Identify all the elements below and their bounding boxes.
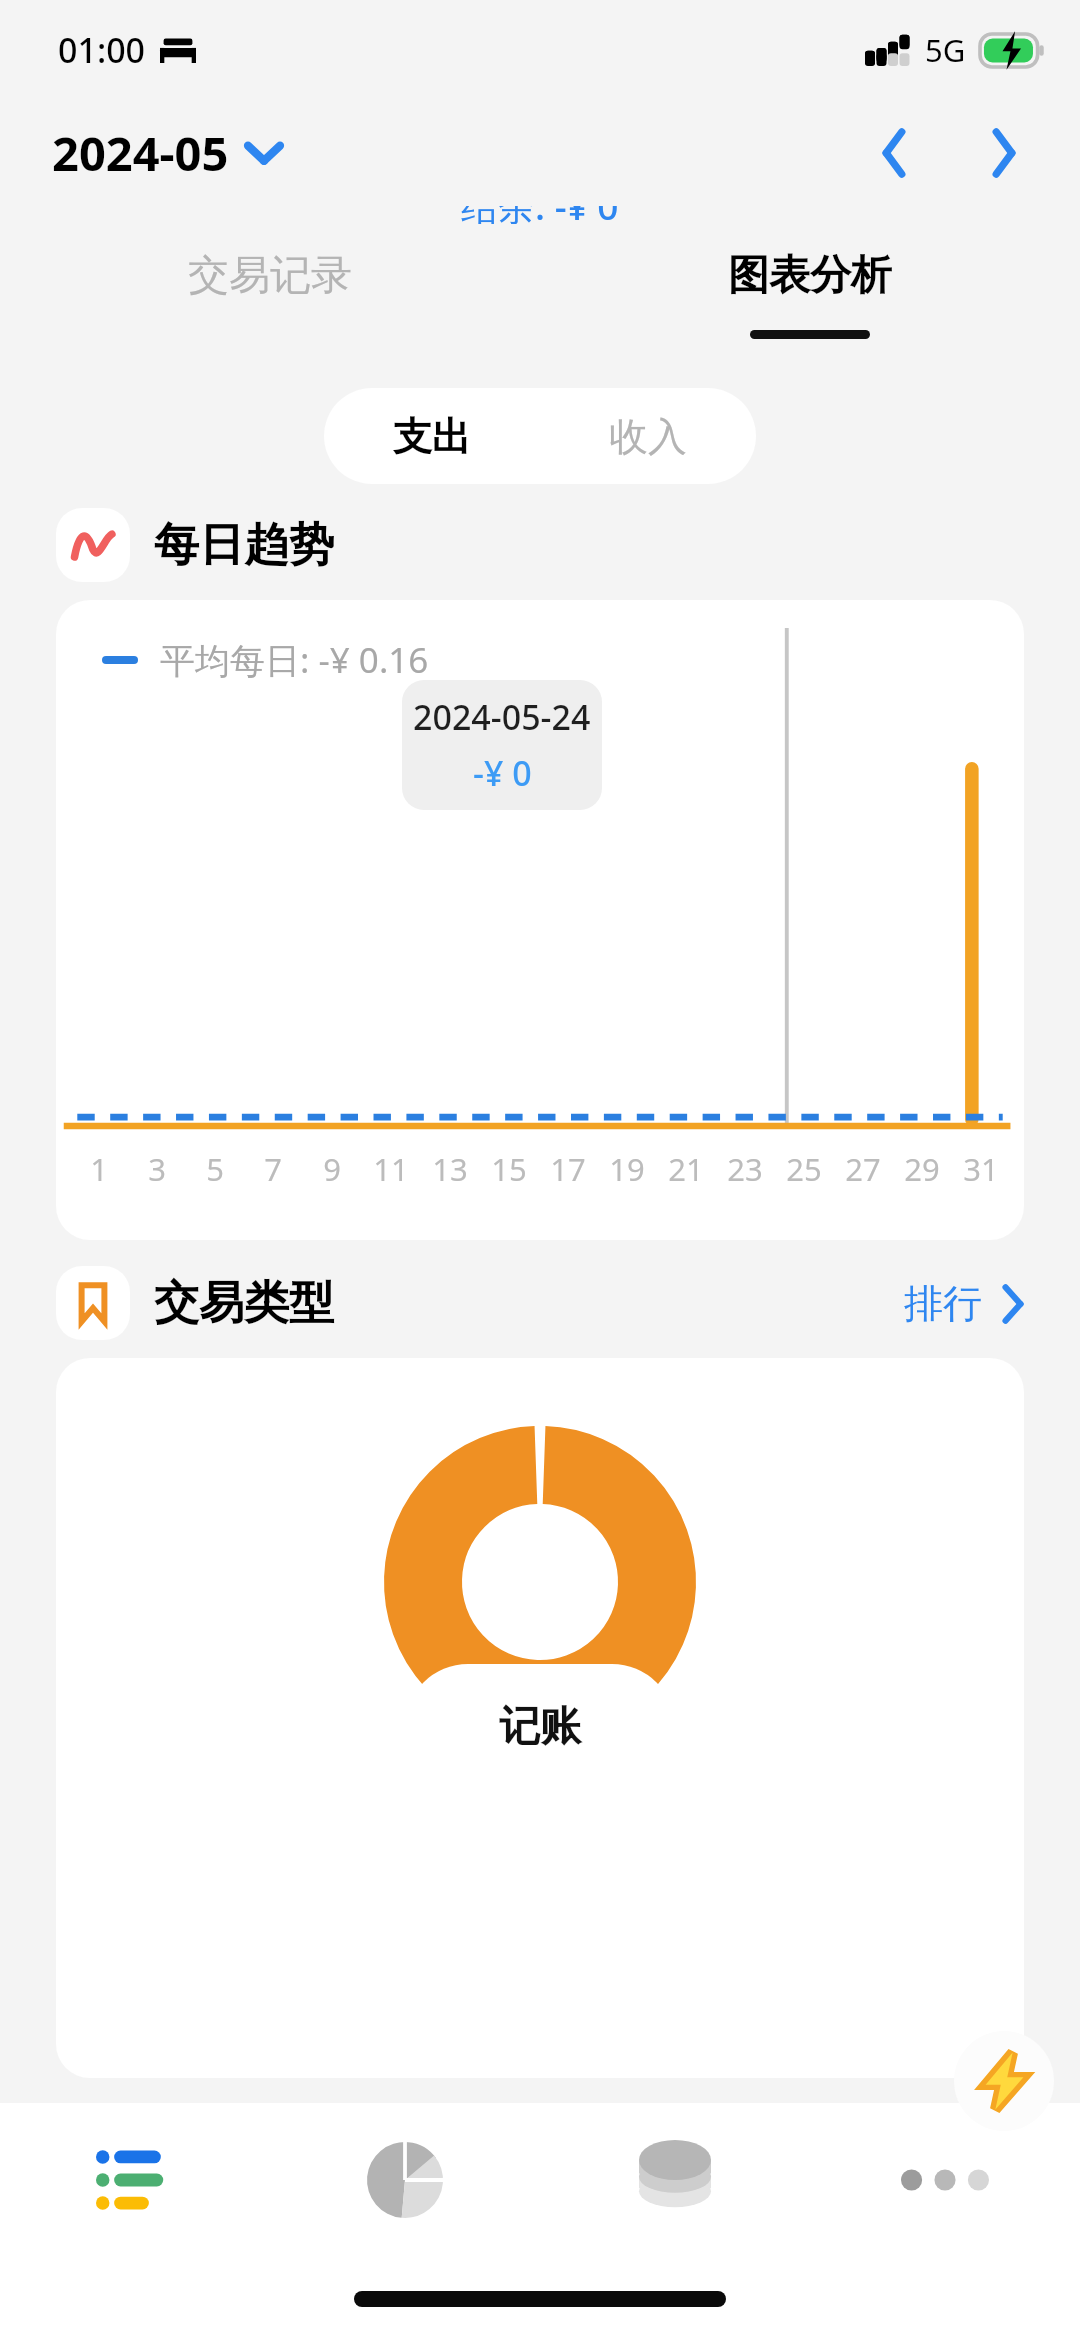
staticText: 每日趋势 xyxy=(154,517,334,574)
staticText: 29 xyxy=(904,1148,940,1190)
staticText: 2024-05 xyxy=(52,121,229,185)
staticText: 21 xyxy=(668,1148,704,1190)
staticText: 收入 xyxy=(609,412,687,461)
button[interactable]: 图表分析 xyxy=(540,250,1080,372)
staticText: 交易类型 xyxy=(154,1275,334,1332)
button[interactable]: More xyxy=(810,2103,1080,2257)
button[interactable]: Next month xyxy=(964,113,1044,193)
button[interactable]: Assets xyxy=(540,2103,810,2257)
staticText: 01:00 xyxy=(58,27,146,73)
button[interactable]: Quick record xyxy=(954,2031,1054,2131)
staticText: 31 xyxy=(963,1148,999,1190)
staticText: 23 xyxy=(727,1148,763,1190)
staticText: 1 xyxy=(90,1148,108,1190)
staticText: 图表分析 xyxy=(728,250,892,302)
button[interactable]: Charts xyxy=(270,2103,540,2257)
button[interactable]: 排行 xyxy=(884,1279,1024,1328)
button[interactable]: 每日趋势 xyxy=(56,508,1024,582)
staticText: 25 xyxy=(786,1148,822,1190)
staticText: 结余: -¥ 0 xyxy=(461,206,619,224)
staticText: 13 xyxy=(432,1148,468,1190)
staticText: -¥ 0 xyxy=(473,750,532,796)
button[interactable]: Previous month xyxy=(854,113,934,193)
staticText: 记账 xyxy=(499,1701,581,1753)
staticText: 3 xyxy=(148,1148,166,1190)
button[interactable]: 平均每日: -¥ 0.16 xyxy=(56,600,1024,1240)
button[interactable]: 支出 xyxy=(324,388,540,484)
button[interactable]: Records xyxy=(0,2103,270,2257)
staticText: 交易记录 xyxy=(188,250,352,302)
staticText: 19 xyxy=(609,1148,645,1190)
staticText: 17 xyxy=(550,1148,586,1190)
staticText: 5 xyxy=(206,1148,224,1190)
button[interactable]: 收入 xyxy=(540,388,756,484)
staticText: 9 xyxy=(323,1148,341,1190)
button[interactable]: 交易记录 xyxy=(0,250,540,372)
staticText: 7 xyxy=(264,1148,282,1190)
staticText: 15 xyxy=(491,1148,527,1190)
staticText: 27 xyxy=(845,1148,881,1190)
staticText: 2024-05-24 xyxy=(413,694,591,740)
button[interactable]: 交易类型 xyxy=(56,1266,884,1340)
staticText: 排行 xyxy=(904,1279,982,1328)
staticText: 支出 xyxy=(393,412,471,461)
button[interactable]: 2024-05 xyxy=(52,121,283,185)
button[interactable]: 记账 xyxy=(56,1358,1024,2078)
staticText: 平均每日: -¥ 0.16 xyxy=(160,636,429,684)
staticText: 11 xyxy=(373,1148,409,1190)
staticText: 5G xyxy=(925,29,966,71)
